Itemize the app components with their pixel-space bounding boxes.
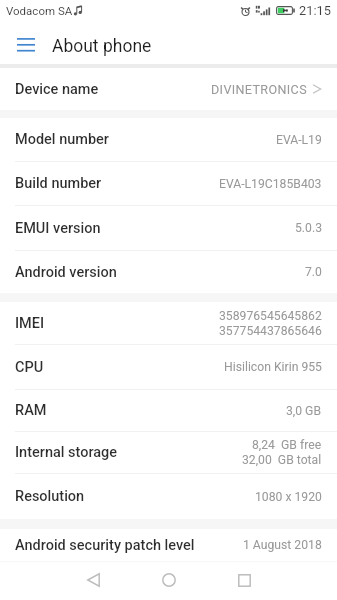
button[interactable]: Menu: [0, 22, 52, 64]
staticText: Resolution: [15, 488, 85, 505]
button[interactable]: Recents: [223, 561, 265, 599]
button[interactable]: Resolution: [0, 474, 337, 519]
button[interactable]: Internal storage: [0, 432, 337, 473]
staticText: 358976545645862: [219, 309, 322, 323]
button[interactable]: Android version: [0, 251, 337, 293]
staticText: Android security patch level: [15, 537, 195, 554]
button[interactable]: Home: [148, 561, 190, 599]
button[interactable]: Model number: [0, 118, 337, 161]
staticText: Android version: [15, 264, 117, 281]
staticText: 3,0 GB: [286, 404, 322, 418]
staticText: EVA-L19: [276, 133, 322, 147]
button[interactable]: Device name: [0, 68, 337, 110]
staticText: 1080 x 1920: [255, 490, 322, 504]
staticText: Vodacom SA: [6, 4, 73, 17]
staticText: 21:15: [299, 3, 331, 18]
staticText: IMEI: [15, 315, 45, 332]
staticText: Device name: [15, 81, 99, 98]
staticText: 8,24 GB free: [252, 438, 322, 452]
staticText: Hisilicon Kirin 955: [224, 360, 322, 374]
button[interactable]: Build number: [0, 162, 337, 205]
button[interactable]: Android security patch level: [0, 529, 337, 561]
staticText: 32,00 GB total: [242, 453, 322, 467]
staticText: 5.0.3: [295, 221, 322, 235]
staticText: About phone: [52, 36, 152, 57]
staticText: 7.0: [305, 265, 322, 279]
button[interactable]: EMUI version: [0, 206, 337, 250]
staticText: Internal storage: [15, 444, 118, 461]
button[interactable]: Back: [72, 561, 114, 599]
button[interactable]: CPU: [0, 345, 337, 389]
staticText: EMUI version: [15, 220, 101, 237]
staticText: RAM: [15, 402, 47, 419]
staticText: Model number: [15, 131, 109, 148]
staticText: 357754437865646: [219, 324, 322, 338]
staticText: EVA-L19C185B403: [219, 177, 322, 191]
staticText: CPU: [15, 359, 44, 376]
staticText: Build number: [15, 175, 102, 192]
button[interactable]: RAM: [0, 390, 337, 431]
staticText: 1 August 2018: [243, 538, 322, 552]
staticText: DIVINETRONICS: [211, 82, 307, 97]
button[interactable]: IMEI: [0, 302, 337, 344]
